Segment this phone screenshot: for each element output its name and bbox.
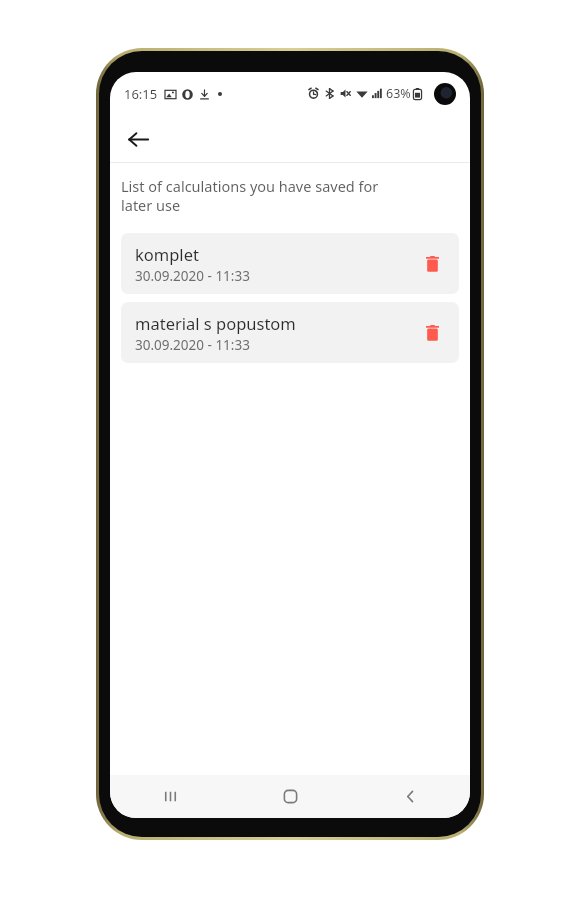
- button[interactable]: Back: [350, 775, 470, 818]
- button[interactable]: material s popustom: [121, 302, 459, 363]
- button[interactable]: komplet: [121, 233, 459, 294]
- button[interactable]: Back: [118, 119, 158, 159]
- button[interactable]: Home: [230, 775, 350, 818]
- staticText: 63%: [386, 85, 411, 102]
- staticText: 30.09.2020 - 11:33: [135, 267, 250, 285]
- staticText: 16:15: [124, 85, 158, 103]
- button[interactable]: Delete: [415, 316, 449, 350]
- staticText: komplet: [135, 243, 199, 265]
- staticText: 30.09.2020 - 11:33: [135, 336, 250, 354]
- button[interactable]: Recent apps: [110, 775, 230, 818]
- staticText: material s popustom: [135, 312, 296, 334]
- staticText: List of calculations you have saved for …: [121, 176, 379, 215]
- button[interactable]: Delete: [415, 247, 449, 281]
